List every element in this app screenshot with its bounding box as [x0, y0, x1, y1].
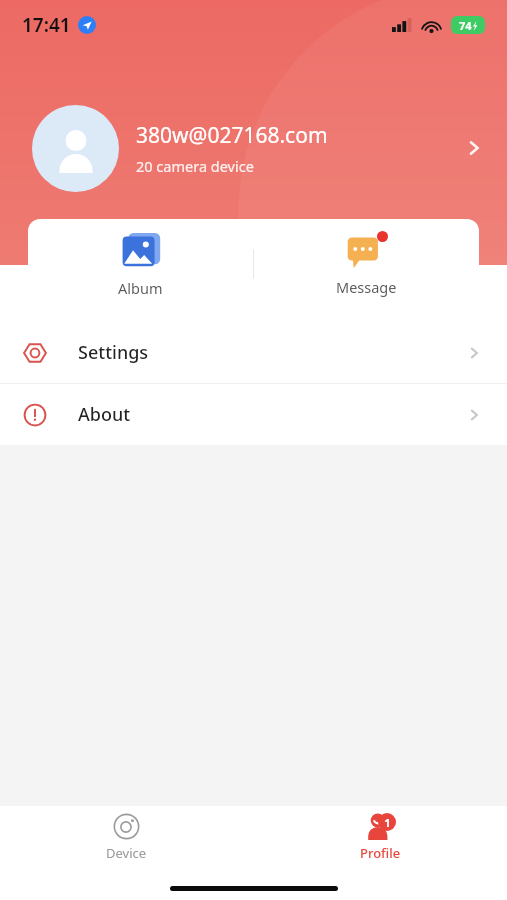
- staticText: 20 camera device: [136, 156, 254, 176]
- staticText: Profile: [360, 844, 401, 862]
- button[interactable]: Message: [254, 219, 479, 309]
- button[interactable]: Device: [0, 806, 253, 868]
- staticText: Album: [118, 278, 163, 298]
- staticText: Message: [336, 277, 397, 297]
- button[interactable]: 380w@027168.com: [0, 98, 507, 198]
- button[interactable]: Album: [28, 219, 253, 309]
- staticText: 1: [384, 815, 391, 830]
- other: Open account: [463, 137, 485, 159]
- button[interactable]: About: [0, 384, 507, 445]
- button[interactable]: 1: [253, 806, 507, 868]
- button[interactable]: Settings: [0, 322, 507, 383]
- staticText: Settings: [78, 340, 149, 365]
- staticText: 380w@027168.com: [136, 121, 328, 150]
- staticText: 74: [459, 18, 472, 33]
- staticText: 17:41: [22, 12, 71, 38]
- staticText: About: [78, 402, 131, 427]
- staticText: Device: [106, 844, 147, 862]
